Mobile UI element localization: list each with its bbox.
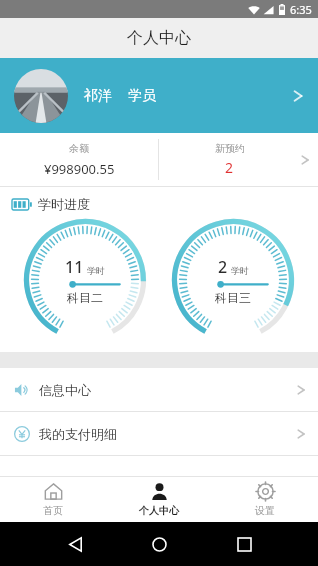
- button[interactable]: Home: [149, 534, 169, 554]
- staticText: 个人中心: [139, 504, 179, 517]
- staticText: 2: [218, 256, 228, 278]
- staticText: 学时: [87, 265, 105, 276]
- button[interactable]: 我的支付明细: [0, 412, 318, 455]
- staticText: 学时: [231, 265, 249, 276]
- button[interactable]: 首页: [0, 477, 106, 522]
- button[interactable]: 余额: [0, 133, 158, 186]
- staticText: 余额: [69, 142, 89, 155]
- staticText: 6:35: [290, 2, 312, 17]
- button[interactable]: 信息中心: [0, 368, 318, 411]
- button[interactable]: 设置: [212, 477, 318, 522]
- staticText: 设置: [255, 504, 275, 517]
- button[interactable]: Back: [65, 534, 85, 554]
- button[interactable]: Recents: [234, 534, 254, 554]
- staticText: 2: [225, 158, 234, 177]
- staticText: 11: [65, 256, 84, 278]
- staticText: 信息中心: [39, 382, 91, 398]
- staticText: 个人中心: [127, 28, 191, 48]
- staticText: 我的支付明细: [39, 426, 117, 442]
- button[interactable]: 新预约: [159, 133, 318, 186]
- staticText: 科目三: [215, 290, 251, 305]
- staticText: ¥998900.55: [44, 160, 115, 178]
- staticText: 学员: [128, 87, 156, 105]
- staticText: 首页: [43, 504, 63, 517]
- staticText: 新预约: [215, 142, 245, 155]
- staticText: 学时进度: [38, 196, 90, 212]
- staticText: 科目二: [67, 290, 103, 305]
- button[interactable]: 祁洋: [0, 58, 318, 133]
- button[interactable]: 个人中心: [106, 477, 212, 522]
- staticText: 祁洋: [84, 87, 112, 105]
